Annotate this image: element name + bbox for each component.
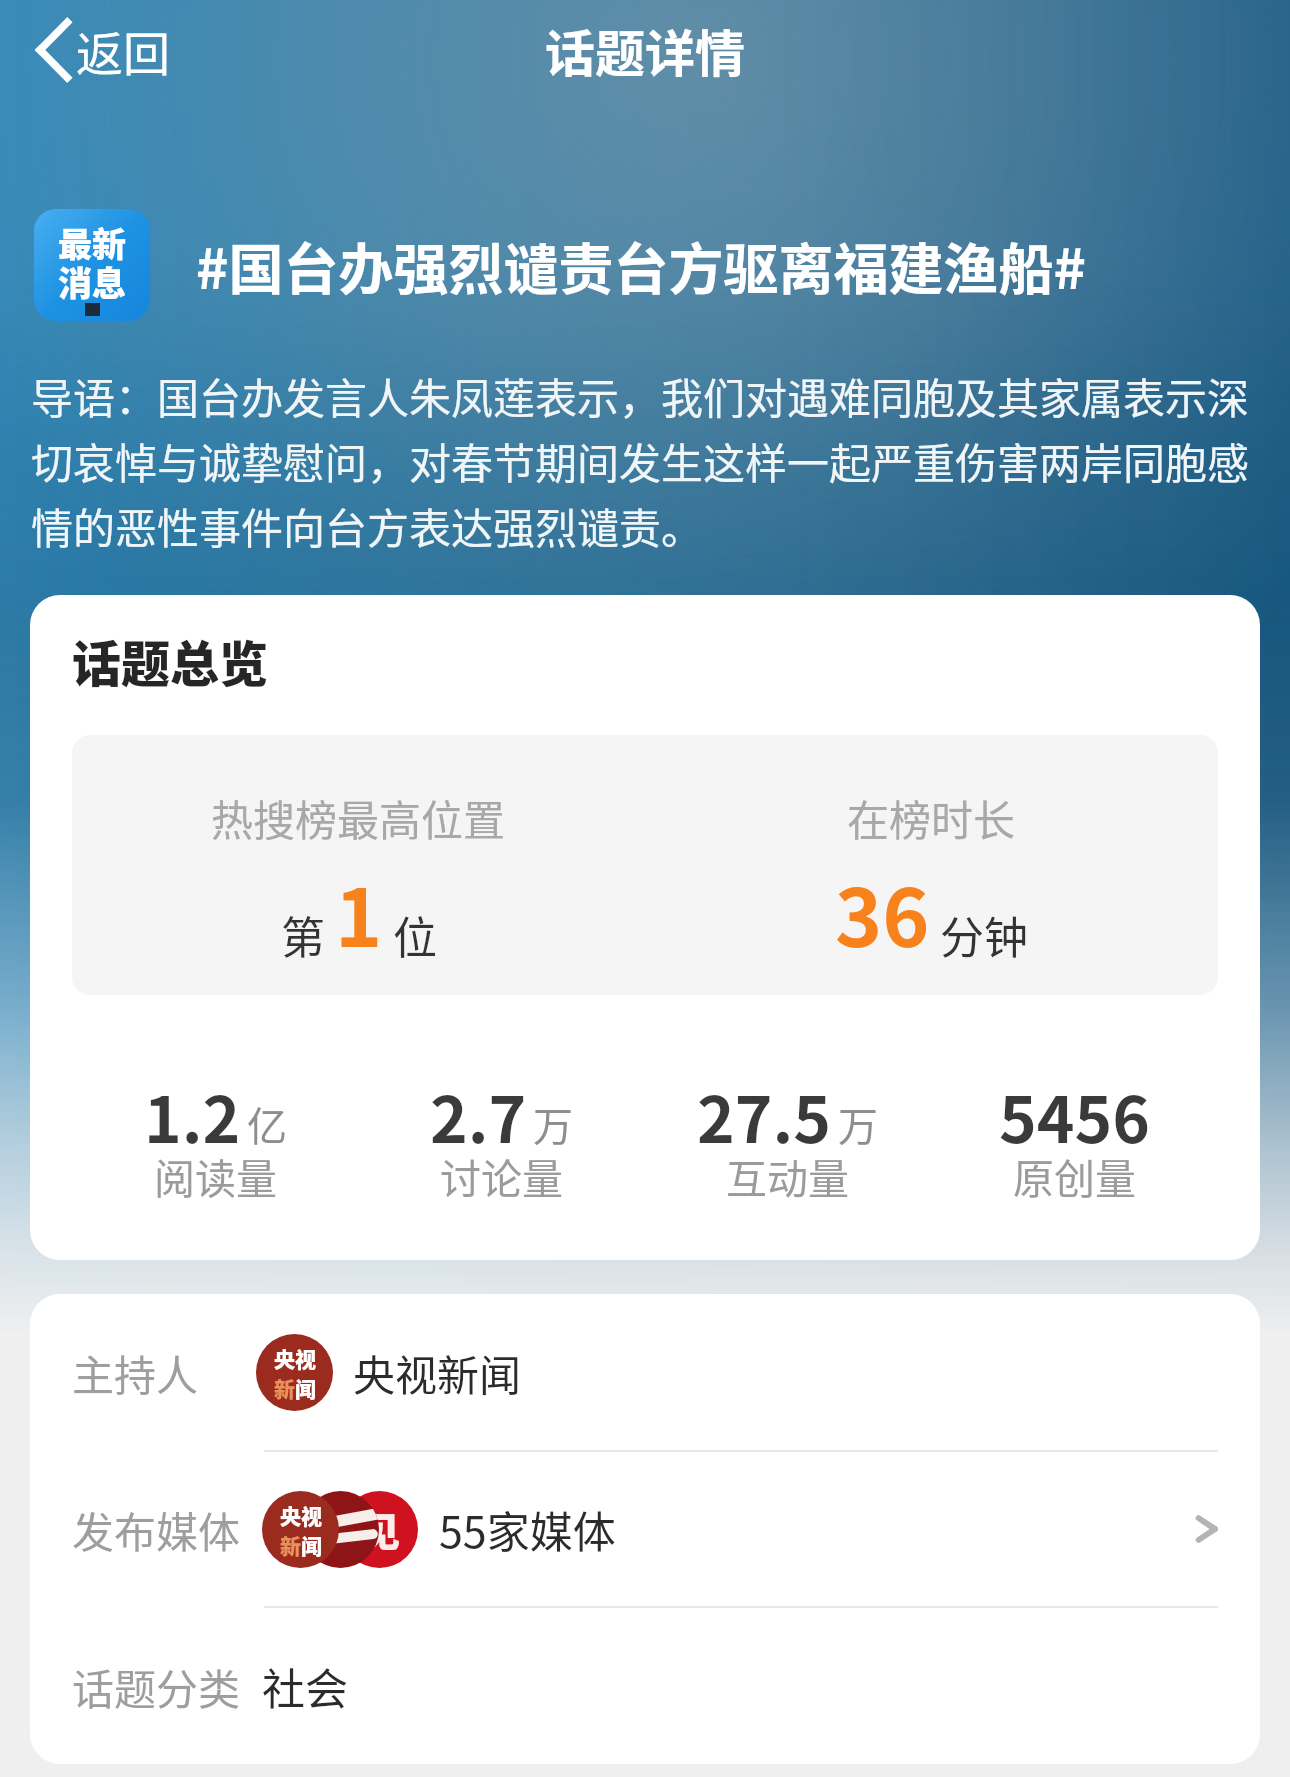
staticText: 视 xyxy=(301,1500,322,1530)
staticText: 2.7 xyxy=(430,1069,527,1162)
staticText: 话题详情 xyxy=(545,14,745,86)
staticText: 万 xyxy=(533,1095,573,1153)
staticText: 原创量 xyxy=(1013,1146,1136,1205)
staticText: 分钟 xyxy=(940,903,1028,967)
staticText: 5456 xyxy=(999,1069,1151,1162)
button[interactable]: 主持人 xyxy=(30,1294,1260,1450)
staticText: 视 xyxy=(295,1343,316,1373)
staticText: 亿 xyxy=(247,1095,287,1153)
staticText: 万 xyxy=(838,1095,878,1153)
staticText: 发布媒体 xyxy=(72,1499,241,1560)
staticText: 闻 xyxy=(295,1373,316,1403)
staticText: 互动量 xyxy=(726,1146,849,1205)
staticText: 36 xyxy=(835,854,930,970)
staticText: 1 xyxy=(335,854,383,970)
button[interactable]: Back xyxy=(24,8,178,92)
staticText: 社会 xyxy=(262,1655,348,1717)
staticText: 闻 xyxy=(301,1530,322,1560)
staticText: 第 xyxy=(281,903,325,967)
button[interactable]: 发布媒体 xyxy=(30,1452,1260,1606)
other: View media list xyxy=(1196,1512,1218,1546)
staticText: 消息 xyxy=(58,257,126,306)
staticText: 讨论量 xyxy=(440,1146,563,1205)
staticText: 27.5 xyxy=(697,1069,832,1162)
staticText: 新 xyxy=(280,1530,301,1560)
staticText: 阅读量 xyxy=(154,1146,277,1205)
staticText: 话题总览 xyxy=(72,625,269,696)
staticText: 1.2 xyxy=(144,1069,241,1162)
staticText: 主持人 xyxy=(72,1342,199,1403)
staticText: 央 xyxy=(280,1500,301,1530)
staticText: 情的恶性事件向台方表达强烈谴责。 xyxy=(31,495,704,556)
staticText: 55家媒体 xyxy=(439,1498,616,1560)
staticText: 话题分类 xyxy=(72,1656,241,1717)
staticText: 位 xyxy=(393,903,437,967)
staticText: 新 xyxy=(274,1373,295,1403)
staticText: 导语：国台办发言人朱凤莲表示，我们对遇难同胞及其家属表示深 xyxy=(31,365,1250,426)
button[interactable]: 话题分类 xyxy=(30,1608,1260,1764)
staticText: 央 xyxy=(274,1343,295,1373)
staticText: #国台办强烈谴责台方驱离福建渔船# xyxy=(196,225,1086,305)
staticText: 切哀悼与诚挚慰问，对春节期间发生这样一起严重伤害两岸同胞感 xyxy=(31,430,1250,491)
staticText: 返回 xyxy=(76,16,170,84)
staticText: 最新 xyxy=(58,218,126,267)
staticText: 见 xyxy=(360,1501,400,1559)
staticText: 热搜榜最高位置 xyxy=(211,787,506,848)
staticText: 在榜时长 xyxy=(847,787,1016,848)
staticText: 央视新闻 xyxy=(353,1342,522,1403)
